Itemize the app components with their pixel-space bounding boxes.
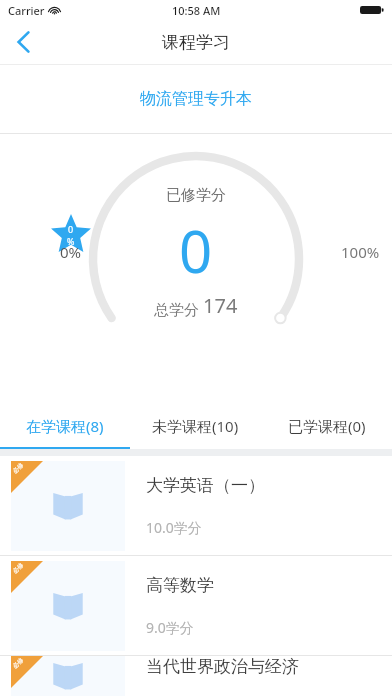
staticText: 已修学分 <box>166 186 226 205</box>
staticText: 必修 <box>11 561 25 575</box>
button[interactable]: 必修 <box>0 556 392 655</box>
staticText: 必修 <box>11 656 25 670</box>
staticText: 10.0学分 <box>146 518 202 537</box>
staticText: % <box>67 235 75 247</box>
button[interactable]: 未学课程(10) <box>130 404 261 449</box>
staticText: 0 <box>68 223 74 235</box>
staticText: 174 <box>203 292 238 319</box>
staticText: 在学课程(8) <box>26 416 104 436</box>
staticText: 当代世界政治与经济 <box>146 656 299 677</box>
button[interactable]: 必修 <box>0 656 392 696</box>
staticText: Carrier <box>8 3 45 18</box>
button[interactable]: 物流管理专升本 <box>0 65 392 133</box>
staticText: 未学课程(10) <box>152 416 239 436</box>
staticText: 高等数学 <box>146 575 214 596</box>
button[interactable]: 已学课程(0) <box>261 404 392 449</box>
staticText: 大学英语（一） <box>146 475 265 496</box>
staticText: 10:58 AM <box>172 3 221 18</box>
staticText: 0 <box>179 211 213 290</box>
staticText: 课程学习 <box>162 32 230 53</box>
staticText: 必修 <box>11 461 25 475</box>
staticText: 总学分 <box>154 299 203 319</box>
staticText: 已学课程(0) <box>288 416 366 436</box>
staticText: 物流管理专升本 <box>140 89 252 109</box>
staticText: 0% <box>60 242 82 262</box>
button[interactable]: 在学课程(8) <box>0 404 130 449</box>
staticText: 100% <box>341 242 380 262</box>
button[interactable]: 必修 <box>0 456 392 555</box>
staticText: 9.0学分 <box>146 618 194 637</box>
button[interactable]: Back <box>0 20 46 64</box>
